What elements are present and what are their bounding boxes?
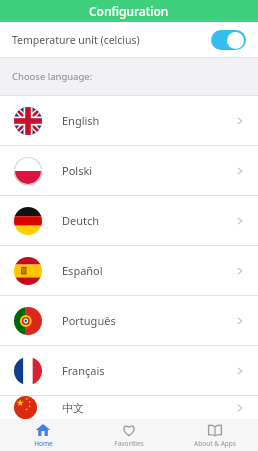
button[interactable]: Favorities — [86, 419, 172, 451]
staticText: Choose language: — [12, 70, 93, 83]
button[interactable]: Português — [0, 296, 258, 345]
staticText: Home — [34, 439, 53, 448]
button[interactable]: Français — [0, 346, 258, 395]
staticText: Français — [62, 363, 105, 378]
staticText: Polski — [62, 163, 93, 178]
staticText: 中文 — [62, 401, 84, 415]
button[interactable]: Temperature unit toggle — [211, 30, 246, 50]
button[interactable]: Deutch — [0, 196, 258, 245]
staticText: Deutch — [62, 213, 100, 228]
staticText: Português — [62, 313, 116, 328]
button[interactable]: Temperature unit (celcius) — [0, 22, 258, 57]
button[interactable]: Español — [0, 246, 258, 295]
button[interactable]: Polski — [0, 146, 258, 195]
staticText: Favorities — [114, 439, 144, 448]
staticText: English — [62, 113, 100, 128]
button[interactable]: 中文 — [0, 396, 258, 419]
staticText: Configuration — [89, 3, 169, 19]
staticText: Temperature unit (celcius) — [12, 33, 140, 47]
button[interactable]: Home — [0, 419, 86, 451]
staticText: Español — [62, 263, 103, 278]
staticText: About & Apps — [194, 439, 236, 448]
button[interactable]: About & Apps — [172, 419, 258, 451]
button[interactable]: English — [0, 96, 258, 145]
